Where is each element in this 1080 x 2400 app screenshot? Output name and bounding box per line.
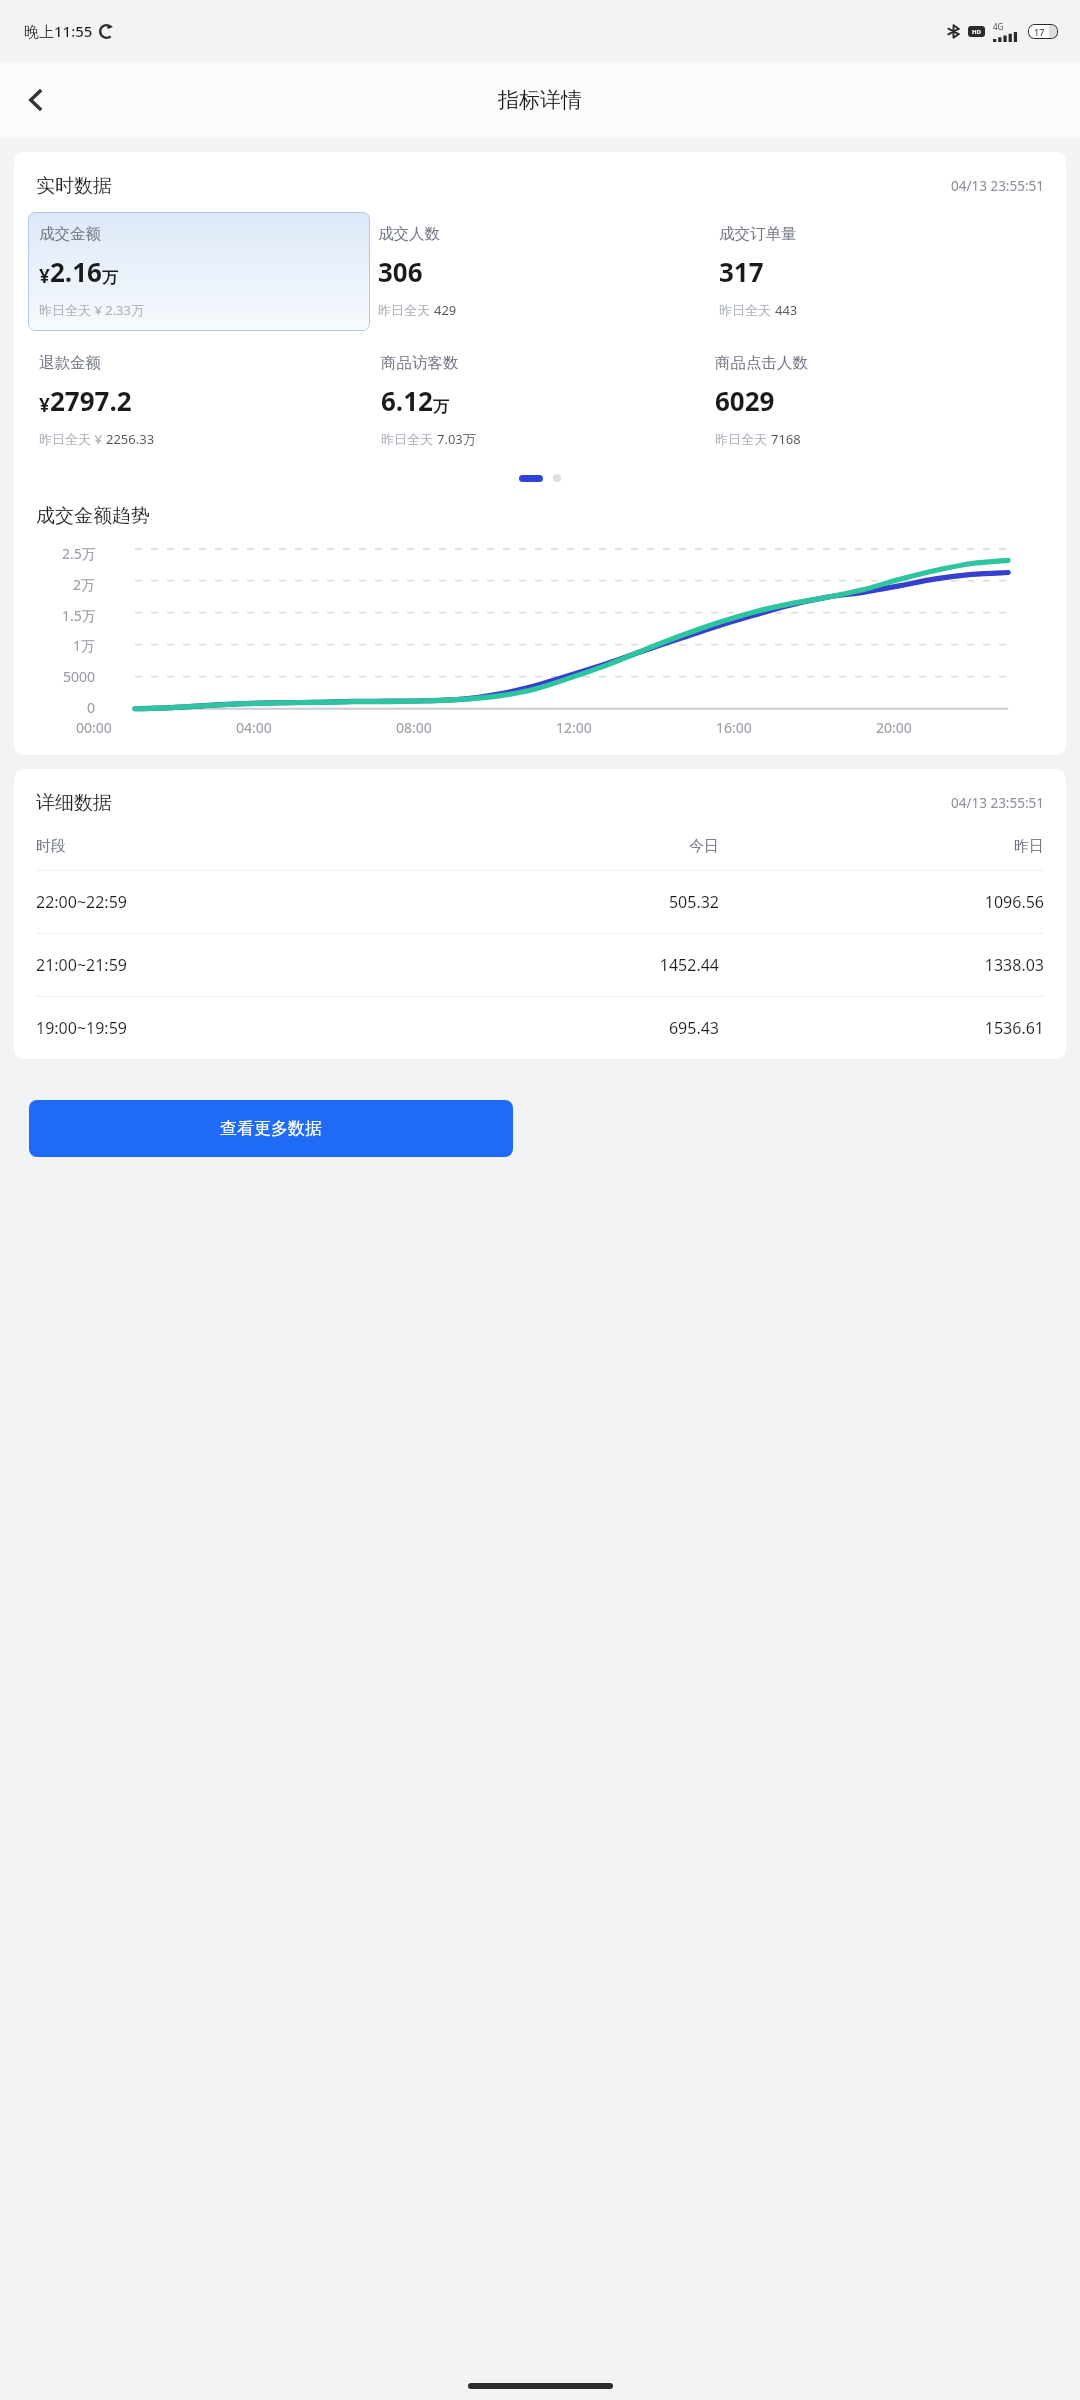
staticText: 2.16 xyxy=(50,254,102,289)
staticText: 退款金额 xyxy=(39,353,101,373)
staticText: 2.5万 xyxy=(62,544,96,563)
staticText: 19:00~19:59 xyxy=(36,1017,394,1039)
staticText: 今日 xyxy=(394,837,719,856)
staticText: ¥ xyxy=(39,263,50,289)
staticText: 实时数据 xyxy=(36,174,112,198)
staticText: 317 xyxy=(719,254,764,289)
staticText: 商品访客数 xyxy=(381,353,459,373)
staticText: 04/13 23:55:51 xyxy=(951,794,1044,812)
staticText: 17 xyxy=(1034,26,1045,38)
staticText: 6.12 xyxy=(381,383,433,418)
staticText: 万 xyxy=(433,397,449,417)
staticText: 时段 xyxy=(36,837,394,856)
button[interactable]: 成交订单量 xyxy=(719,224,1052,319)
staticText: 万 xyxy=(102,268,118,288)
staticText: 查看更多数据 xyxy=(220,1118,322,1139)
button[interactable]: 退款金额 xyxy=(39,353,373,448)
staticText: 04:00 xyxy=(236,718,272,737)
staticText: 1452.44 xyxy=(394,954,719,976)
staticText: 08:00 xyxy=(396,718,432,737)
staticText: 成交订单量 xyxy=(719,224,797,244)
staticText: 429 xyxy=(434,301,457,319)
staticText: 详细数据 xyxy=(36,791,112,815)
staticText: 1536.61 xyxy=(719,1017,1044,1039)
staticText: 16:00 xyxy=(716,718,752,737)
staticText: 0 xyxy=(87,698,96,717)
staticText: 00:00 xyxy=(76,718,112,737)
button[interactable]: 成交人数 xyxy=(378,224,711,319)
button[interactable]: 22:00~22:59 xyxy=(14,871,1066,933)
button[interactable]: 成交金额 xyxy=(28,212,370,331)
staticText: 6029 xyxy=(715,383,775,418)
staticText: 成交金额趋势 xyxy=(36,504,150,528)
staticText: 昨日全天 xyxy=(715,430,771,448)
staticText: 晚上11:55 xyxy=(24,21,93,41)
staticText: 指标详情 xyxy=(498,87,582,113)
staticText: 21:00~21:59 xyxy=(36,954,394,976)
button[interactable]: 商品访客数 xyxy=(381,353,707,448)
staticText: 20:00 xyxy=(876,718,912,737)
staticText: 4G xyxy=(993,21,1004,32)
staticText: 7.03万 xyxy=(437,430,476,448)
staticText: 昨日全天 xyxy=(381,430,437,448)
button[interactable]: 21:00~21:59 xyxy=(14,934,1066,996)
staticText: 04/13 23:55:51 xyxy=(951,177,1044,195)
staticText: HD xyxy=(972,28,981,36)
staticText: 2256.33 xyxy=(106,430,155,448)
staticText: 306 xyxy=(378,254,423,289)
button[interactable]: Back xyxy=(12,76,60,124)
button[interactable]: 19:00~19:59 xyxy=(14,997,1066,1059)
button[interactable]: 商品点击人数 xyxy=(715,353,1041,448)
staticText: 12:00 xyxy=(556,718,592,737)
staticText: 2797.2 xyxy=(50,383,132,418)
staticText: 1.5万 xyxy=(62,606,96,625)
staticText: 昨日全天 ¥ 2.33万 xyxy=(39,301,144,319)
staticText: 1338.03 xyxy=(719,954,1044,976)
staticText: 昨日 xyxy=(719,837,1044,856)
staticText: 505.32 xyxy=(394,891,719,913)
staticText: 443 xyxy=(775,301,798,319)
staticText: 昨日全天 xyxy=(719,301,775,319)
staticText: 昨日全天 xyxy=(378,301,434,319)
staticText: 成交人数 xyxy=(378,224,440,244)
staticText: 昨日全天 ¥ xyxy=(39,430,106,448)
staticText: ¥ xyxy=(39,392,50,418)
staticText: 5000 xyxy=(63,667,96,686)
staticText: 7168 xyxy=(771,430,801,448)
staticText: 成交金额 xyxy=(39,224,101,244)
staticText: 1万 xyxy=(73,636,96,655)
staticText: 695.43 xyxy=(394,1017,719,1039)
staticText: 1096.56 xyxy=(719,891,1044,913)
button[interactable]: 查看更多数据 xyxy=(29,1100,513,1157)
staticText: 22:00~22:59 xyxy=(36,891,394,913)
staticText: 2万 xyxy=(73,575,96,594)
staticText: 商品点击人数 xyxy=(715,353,808,373)
